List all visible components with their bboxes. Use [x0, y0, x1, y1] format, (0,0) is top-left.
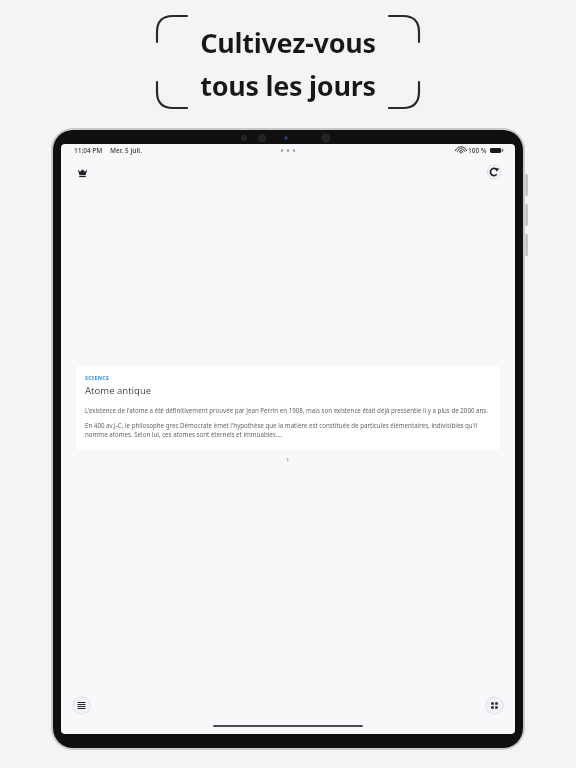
- button[interactable]: Grid view: [485, 696, 504, 715]
- staticText: 1: [286, 456, 290, 464]
- staticText: 11:04 PM: [74, 146, 103, 155]
- staticText: L'existence de l'atome a été définitivem…: [85, 406, 488, 414]
- staticText: tous les jours: [200, 67, 376, 104]
- staticText: Atome antique: [85, 384, 152, 397]
- button[interactable]: Premium: [72, 162, 92, 182]
- button[interactable]: List: [72, 696, 91, 715]
- staticText: 100 %: [468, 146, 487, 155]
- staticText: SCIENCE: [85, 374, 110, 381]
- button[interactable]: Refresh: [484, 162, 504, 182]
- button[interactable]: SCIENCE: [76, 366, 500, 450]
- staticText: Cultivez-vous: [200, 24, 376, 61]
- staticText: En 400 av.J-C, le philosophe grec Démocr…: [85, 421, 491, 439]
- staticText: Mer. 5 juil.: [110, 146, 142, 155]
